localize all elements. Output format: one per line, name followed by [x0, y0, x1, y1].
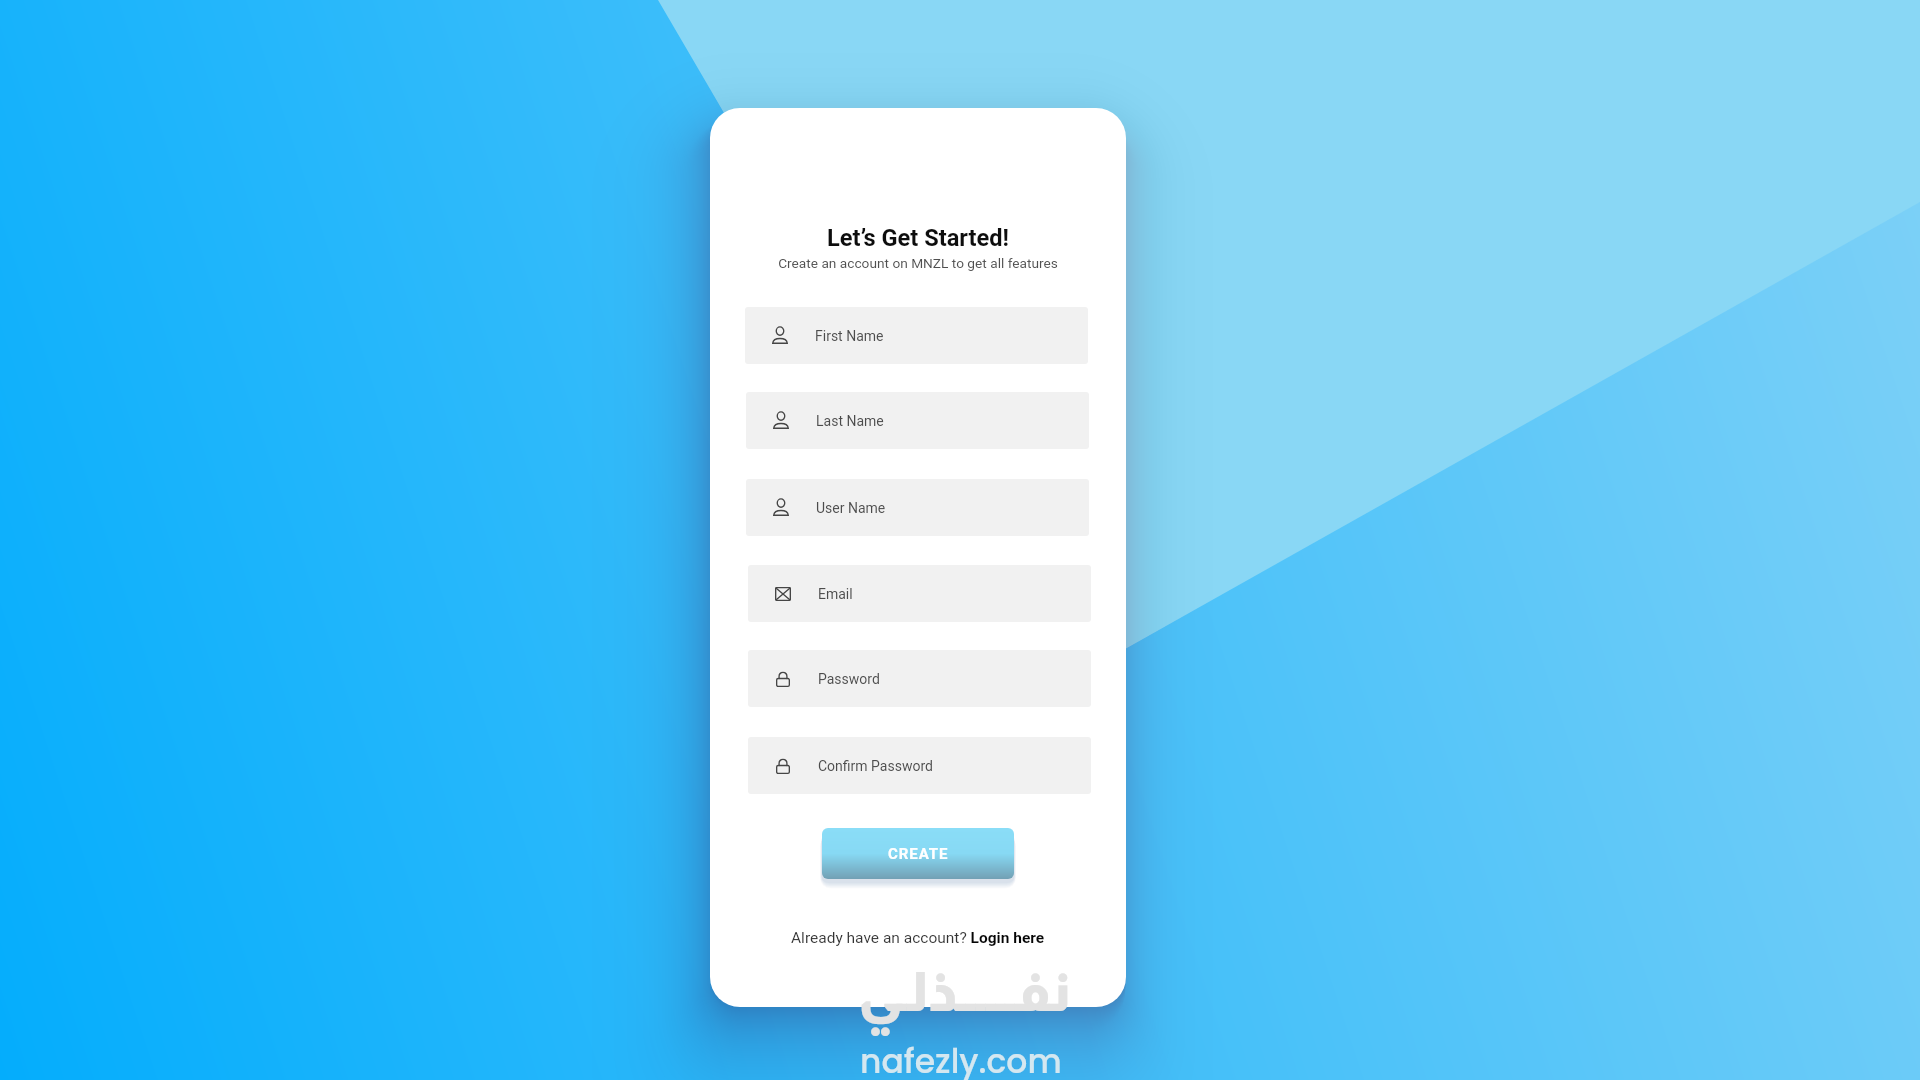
staticText: nafezly.com: [860, 1038, 1062, 1080]
button[interactable]: First Name: [745, 307, 1088, 364]
staticText: Last Name: [816, 413, 884, 429]
staticText: Confirm Password: [818, 758, 933, 774]
staticText: Create an account on MNZL to get all fea…: [778, 255, 1058, 271]
button[interactable]: Last Name: [746, 392, 1089, 449]
staticText: User Name: [816, 500, 886, 516]
button[interactable]: Email: [748, 565, 1091, 622]
button[interactable]: Already have an account? Login here: [791, 929, 1045, 947]
button[interactable]: CREATE: [822, 828, 1014, 879]
button[interactable]: Confirm Password: [748, 737, 1091, 794]
staticText: CREATE: [888, 845, 949, 863]
staticText: Let’s Get Started!: [827, 224, 1009, 252]
staticText: Email: [818, 586, 853, 602]
staticText: First Name: [815, 328, 884, 344]
button[interactable]: Password: [748, 650, 1091, 707]
button[interactable]: User Name: [746, 479, 1089, 536]
staticText: Password: [818, 671, 880, 687]
staticText: نفــــــذلـي: [858, 961, 1072, 1022]
